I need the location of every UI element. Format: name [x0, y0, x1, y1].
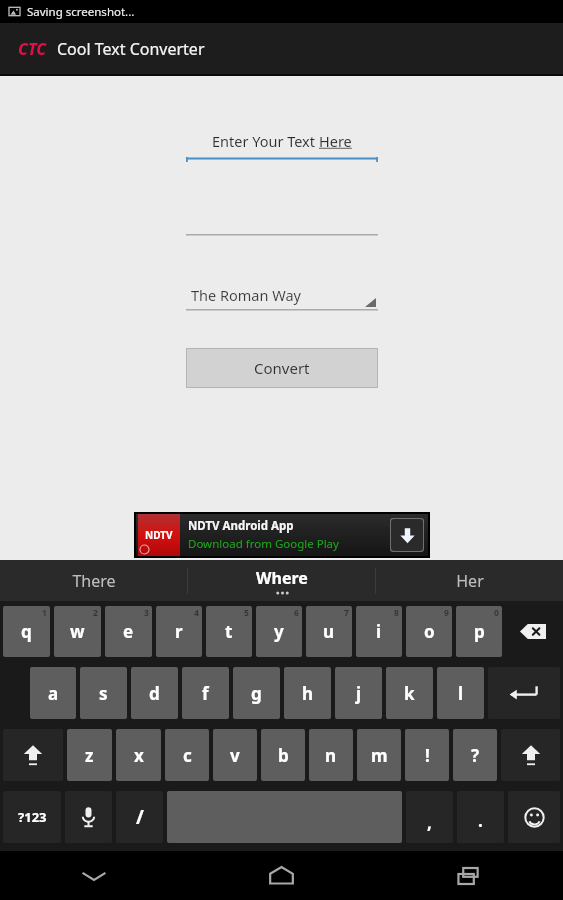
- button[interactable]: a: [30, 667, 76, 719]
- staticText: 3: [144, 607, 149, 619]
- staticText: 0: [494, 607, 499, 619]
- staticText: NDTV Android App: [188, 518, 294, 534]
- button[interactable]: e: [105, 606, 152, 657]
- button[interactable]: m: [357, 729, 401, 781]
- staticText: r: [175, 620, 183, 643]
- staticText: o: [424, 620, 435, 643]
- button[interactable]: Emoji: [508, 791, 560, 843]
- button[interactable]: r: [156, 606, 202, 657]
- staticText: z: [85, 744, 94, 767]
- staticText: 2: [93, 607, 98, 619]
- button[interactable]: ?: [453, 729, 497, 781]
- button[interactable]: Enter Your Text: [186, 129, 378, 162]
- staticText: Saving screenshot...: [27, 4, 135, 20]
- button[interactable]: Recent apps: [375, 851, 563, 900]
- button[interactable]: Style selector: [186, 283, 378, 311]
- button[interactable]: Shift: [501, 729, 560, 781]
- staticText: 1: [42, 607, 47, 619]
- staticText: Download from Google Play: [188, 536, 339, 552]
- button[interactable]: /: [116, 791, 163, 843]
- staticText: l: [458, 682, 464, 705]
- button[interactable]: y: [256, 606, 302, 657]
- staticText: ?123: [18, 808, 47, 826]
- button[interactable]: Hide keyboard: [0, 851, 187, 900]
- button[interactable]: c: [165, 729, 209, 781]
- button[interactable]: z: [67, 729, 112, 781]
- button[interactable]: Download: [391, 519, 423, 551]
- staticText: p: [474, 620, 485, 643]
- staticText: 4: [194, 607, 199, 619]
- staticText: h: [302, 682, 314, 705]
- button[interactable]: t: [206, 606, 252, 657]
- button[interactable]: NDTV Android App advertisement: [136, 514, 428, 556]
- staticText: 5: [244, 607, 249, 619]
- staticText: b: [278, 744, 289, 767]
- button[interactable]: x: [116, 729, 161, 781]
- staticText: w: [70, 620, 85, 643]
- staticText: !: [425, 744, 430, 767]
- button[interactable]: [186, 210, 378, 236]
- staticText: 8: [394, 607, 399, 619]
- button[interactable]: Her: [376, 560, 563, 601]
- staticText: c: [183, 744, 192, 767]
- staticText: x: [134, 744, 144, 767]
- button[interactable]: d: [131, 667, 178, 719]
- staticText: /: [136, 804, 144, 830]
- staticText: g: [251, 682, 262, 705]
- staticText: There: [72, 570, 116, 592]
- button[interactable]: w: [54, 606, 101, 657]
- button[interactable]: h: [284, 667, 331, 719]
- staticText: NDTV: [145, 528, 173, 542]
- staticText: y: [274, 620, 284, 643]
- staticText: k: [404, 682, 415, 705]
- button[interactable]: !: [405, 729, 449, 781]
- staticText: i: [376, 620, 382, 643]
- button[interactable]: f: [182, 667, 229, 719]
- button[interactable]: ,: [406, 791, 453, 843]
- button[interactable]: k: [386, 667, 433, 719]
- button[interactable]: s: [80, 667, 127, 719]
- button[interactable]: n: [309, 729, 353, 781]
- staticText: The Roman Way: [191, 285, 301, 305]
- button[interactable]: Home: [187, 851, 375, 900]
- staticText: v: [230, 744, 240, 767]
- staticText: e: [123, 620, 134, 643]
- staticText: 7: [344, 607, 349, 619]
- button[interactable]: Shift: [3, 729, 63, 781]
- staticText: ,: [427, 811, 432, 834]
- staticText: u: [323, 620, 335, 643]
- button[interactable]: b: [261, 729, 305, 781]
- button[interactable]: p: [456, 606, 502, 657]
- button[interactable]: i: [356, 606, 402, 657]
- staticText: ?: [471, 744, 480, 767]
- button[interactable]: g: [233, 667, 280, 719]
- button[interactable]: u: [306, 606, 352, 657]
- button[interactable]: q: [3, 606, 50, 657]
- staticText: Convert: [254, 358, 310, 378]
- staticText: f: [202, 682, 209, 705]
- staticText: Enter Your Text: [212, 131, 319, 151]
- button[interactable]: l: [437, 667, 484, 719]
- button[interactable]: There: [0, 560, 187, 601]
- button[interactable]: ?123: [3, 791, 61, 843]
- staticText: m: [371, 744, 388, 767]
- staticText: j: [356, 682, 362, 705]
- button[interactable]: o: [406, 606, 452, 657]
- staticText: d: [149, 682, 160, 705]
- button[interactable]: Where: [188, 560, 375, 601]
- staticText: Cool Text Converter: [57, 38, 205, 60]
- button[interactable]: Convert: [187, 349, 377, 387]
- button[interactable]: v: [213, 729, 257, 781]
- staticText: 9: [444, 607, 449, 619]
- staticText: Her: [456, 570, 484, 592]
- button[interactable]: Voice input: [65, 791, 112, 843]
- button[interactable]: Enter: [488, 667, 560, 719]
- staticText: .: [478, 809, 483, 832]
- button[interactable]: .: [457, 791, 504, 843]
- button[interactable]: j: [335, 667, 382, 719]
- staticText: Here: [319, 131, 352, 151]
- button[interactable]: Backspace: [504, 604, 562, 659]
- staticText: t: [225, 620, 233, 643]
- staticText: n: [325, 744, 337, 767]
